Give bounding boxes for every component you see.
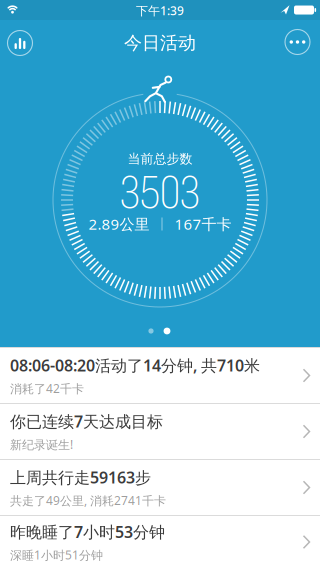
staticText: 共走了49公里, 消耗2741千卡 — [10, 492, 166, 508]
staticText: 当前总步数 — [127, 151, 192, 167]
staticText: 今日活动 — [124, 32, 196, 54]
button[interactable]: 08:06-08:20活动了14分钟, 共710米 — [0, 348, 320, 403]
staticText: 下午1:39 — [136, 2, 184, 19]
staticText: 上周共行走59163步 — [10, 466, 151, 488]
staticText: 08:06-08:20活动了14分钟, 共710米 — [10, 354, 260, 376]
staticText: 你已连续7天达成目标 — [10, 410, 163, 432]
staticText: 消耗了42千卡 — [10, 380, 84, 396]
staticText: 3503 — [120, 167, 200, 219]
staticText: 新纪录诞生! — [10, 436, 73, 452]
staticText: 2.89公里 — [88, 214, 149, 234]
button[interactable]: 上周共行走59163步 — [0, 460, 320, 515]
button[interactable]: 昨晚睡了7小时53分钟 — [0, 516, 320, 568]
staticText: 167千卡 — [174, 214, 231, 234]
button[interactable] — [7, 30, 32, 55]
button[interactable]: 你已连续7天达成目标 — [0, 404, 320, 459]
button[interactable] — [285, 29, 310, 54]
staticText: 深睡1小时51分钟 — [10, 547, 103, 563]
staticText: 昨晚睡了7小时53分钟 — [10, 521, 165, 543]
